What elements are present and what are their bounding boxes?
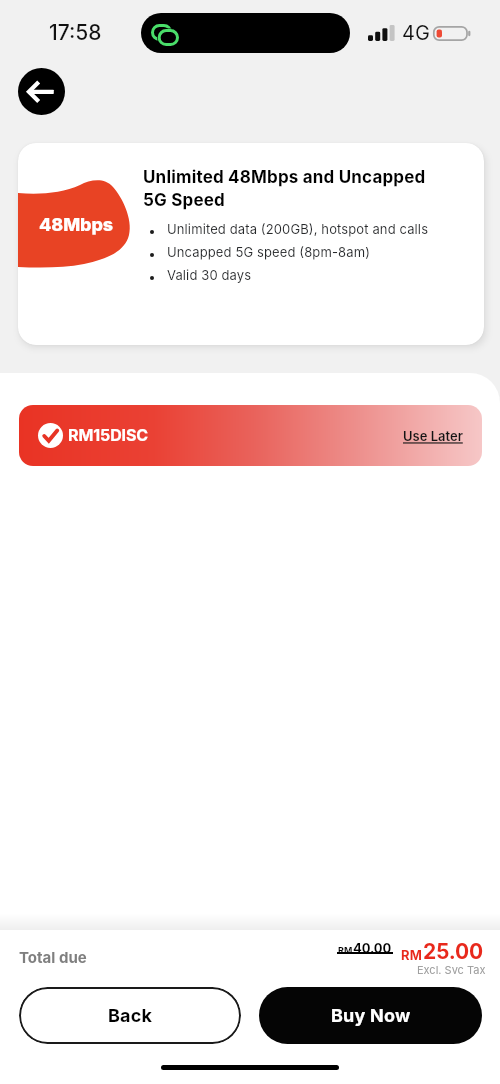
staticText: Use Later <box>403 428 463 444</box>
staticText: Unlimited 48Mbps and Uncapped 5G Speed <box>143 167 426 211</box>
staticText: 40.00 <box>353 940 392 956</box>
staticText: Uncapped 5G speed (8pm-8am) <box>167 244 371 260</box>
staticText: RM <box>401 947 423 963</box>
staticText: Buy Now <box>331 1005 411 1027</box>
staticText: Back <box>108 1005 153 1027</box>
staticText: 17:58 <box>49 20 102 45</box>
button[interactable]: Back <box>18 68 65 115</box>
staticText: RM15DISC <box>68 425 149 444</box>
staticText: Unlimited data (200GB), hotspot and call… <box>167 221 429 237</box>
staticText: RM <box>338 945 353 956</box>
staticText: 4G <box>402 21 430 45</box>
staticText: Valid 30 days <box>167 267 252 283</box>
button[interactable]: RM15DISC <box>19 405 482 466</box>
staticText: 48Mbps <box>39 214 114 236</box>
button[interactable]: Back <box>19 987 241 1044</box>
staticText: Excl. Svc Tax <box>417 963 486 976</box>
staticText: Total due <box>19 948 87 966</box>
button[interactable]: Buy Now <box>259 987 482 1044</box>
staticText: 25.00 <box>423 939 483 964</box>
